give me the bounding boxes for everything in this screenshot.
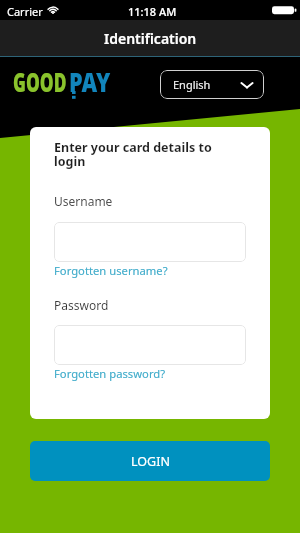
button[interactable]: LOGIN xyxy=(30,441,270,481)
button[interactable]: Forgotten password? xyxy=(54,366,166,381)
staticText: Carrier xyxy=(7,4,43,19)
staticText: Enter your card details to login xyxy=(54,139,234,170)
staticText: 11:18 AM xyxy=(128,4,177,19)
staticText: PAY xyxy=(69,63,111,97)
button[interactable]: Text field xyxy=(54,325,246,365)
button[interactable]: Text field xyxy=(54,222,246,262)
staticText: Password xyxy=(54,297,109,313)
staticText: GOOD xyxy=(13,63,66,97)
button[interactable]: Forgotten username? xyxy=(54,263,168,278)
staticText: Identification xyxy=(104,29,197,48)
staticText: Username xyxy=(54,193,113,209)
staticText: LOGIN xyxy=(131,453,170,470)
button[interactable]: English xyxy=(160,70,264,99)
staticText: English xyxy=(173,77,211,92)
